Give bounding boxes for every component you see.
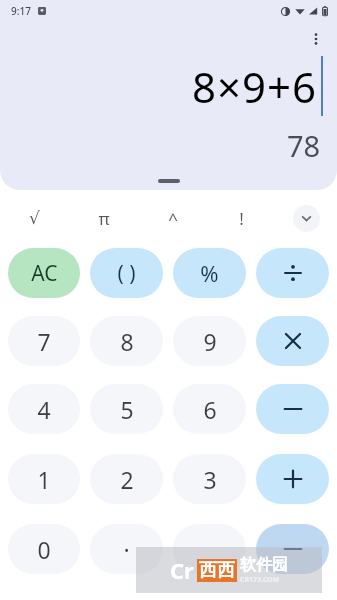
staticText: ( ): [117, 259, 136, 288]
button[interactable]: Multiply: [256, 316, 329, 366]
button[interactable]: Divide: [256, 248, 329, 298]
staticText: 7: [37, 326, 51, 357]
staticText: !: [239, 207, 244, 230]
staticText: 软件园: [240, 555, 288, 575]
button[interactable]: 5: [90, 384, 163, 434]
staticText: 3: [203, 464, 217, 495]
staticText: 78: [287, 126, 321, 165]
button[interactable]: Factorial: [207, 200, 276, 236]
button[interactable]: 6: [173, 384, 246, 434]
button[interactable]: 2: [90, 454, 163, 504]
staticText: 2: [120, 464, 134, 495]
staticText: 8×9+6: [192, 58, 318, 115]
staticText: 6: [203, 394, 217, 425]
button[interactable]: 7: [8, 316, 80, 366]
button[interactable]: %: [173, 248, 246, 298]
staticText: 9:17: [11, 4, 31, 18]
staticText: Cr: [170, 555, 194, 585]
button[interactable]: More options: [303, 26, 329, 52]
button[interactable]: 3: [173, 454, 246, 504]
button[interactable]: Plus: [256, 454, 329, 504]
button[interactable]: ( ): [90, 248, 163, 298]
button[interactable]: Power: [138, 200, 207, 236]
staticText: %: [200, 258, 219, 288]
staticText: π: [98, 207, 110, 230]
staticText: ^: [168, 207, 178, 230]
staticText: 9: [203, 326, 217, 357]
button[interactable]: Minus: [256, 384, 329, 434]
button[interactable]: Pi: [69, 200, 138, 236]
staticText: AC: [31, 259, 58, 288]
staticText: ·: [123, 534, 130, 565]
button[interactable]: 4: [8, 384, 80, 434]
button[interactable]: [173, 524, 246, 574]
button[interactable]: 0: [8, 524, 80, 574]
button[interactable]: AC: [8, 248, 80, 298]
button[interactable]: Expand display: [158, 179, 180, 183]
button[interactable]: More functions: [293, 205, 320, 232]
staticText: 8: [120, 326, 134, 357]
staticText: CR173.COM: [240, 575, 280, 585]
button[interactable]: ·: [90, 524, 163, 574]
button[interactable]: Square root: [0, 200, 69, 236]
staticText: 4: [37, 394, 51, 425]
button[interactable]: 9: [173, 316, 246, 366]
staticText: 西西: [199, 559, 235, 582]
button[interactable]: 8: [90, 316, 163, 366]
button[interactable]: Equals: [256, 524, 329, 574]
staticText: 0: [37, 534, 51, 565]
staticText: 5: [120, 394, 134, 425]
button[interactable]: 1: [8, 454, 80, 504]
staticText: 1: [37, 464, 51, 495]
staticText: √: [29, 208, 40, 228]
